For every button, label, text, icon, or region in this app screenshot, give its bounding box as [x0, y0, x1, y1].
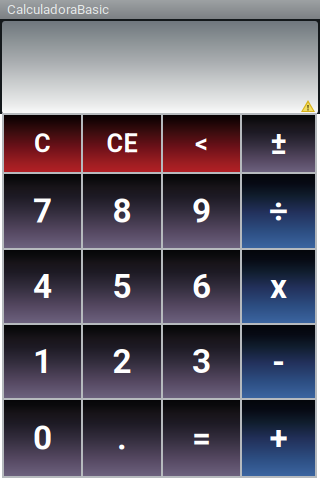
staticText: 3 [192, 342, 211, 381]
staticText: . [117, 418, 127, 458]
button[interactable]: x [241, 249, 316, 324]
button[interactable]: ÷ [241, 173, 316, 249]
staticText: C [34, 129, 51, 158]
staticText: CalculadoraBasic [7, 2, 109, 17]
staticText: 6 [192, 267, 211, 306]
staticText: 8 [112, 191, 131, 231]
button[interactable]: 4 [3, 249, 82, 324]
button[interactable]: 9 [162, 173, 241, 249]
staticText: 5 [112, 267, 131, 306]
button[interactable]: ± [241, 114, 316, 173]
staticText: 2 [112, 342, 131, 381]
button[interactable]: 3 [162, 324, 241, 399]
staticText: 1 [33, 342, 52, 381]
button[interactable]: < [162, 114, 241, 173]
button[interactable]: CE [82, 114, 162, 173]
button[interactable]: 8 [82, 173, 162, 249]
button[interactable]: 1 [3, 324, 82, 399]
button[interactable]: 6 [162, 249, 241, 324]
staticText: x [270, 267, 287, 306]
staticText: < [195, 129, 208, 158]
button[interactable]: C [3, 114, 82, 173]
staticText: CE [106, 129, 137, 158]
staticText: 4 [33, 267, 52, 306]
staticText: 7 [33, 191, 52, 231]
staticText: 0 [33, 418, 52, 458]
staticText: 9 [192, 191, 211, 231]
button[interactable]: . [82, 399, 162, 477]
button[interactable]: 0 [3, 399, 82, 477]
staticText: - [272, 342, 285, 381]
button[interactable]: = [162, 399, 241, 477]
staticText: = [192, 418, 211, 458]
button[interactable]: + [241, 399, 316, 477]
button[interactable]: 5 [82, 249, 162, 324]
button[interactable]: 7 [3, 173, 82, 249]
staticText: ± [270, 125, 286, 161]
button[interactable]: - [241, 324, 316, 399]
button[interactable]: 2 [82, 324, 162, 399]
staticText: ÷ [269, 191, 288, 231]
staticText: + [269, 418, 287, 458]
